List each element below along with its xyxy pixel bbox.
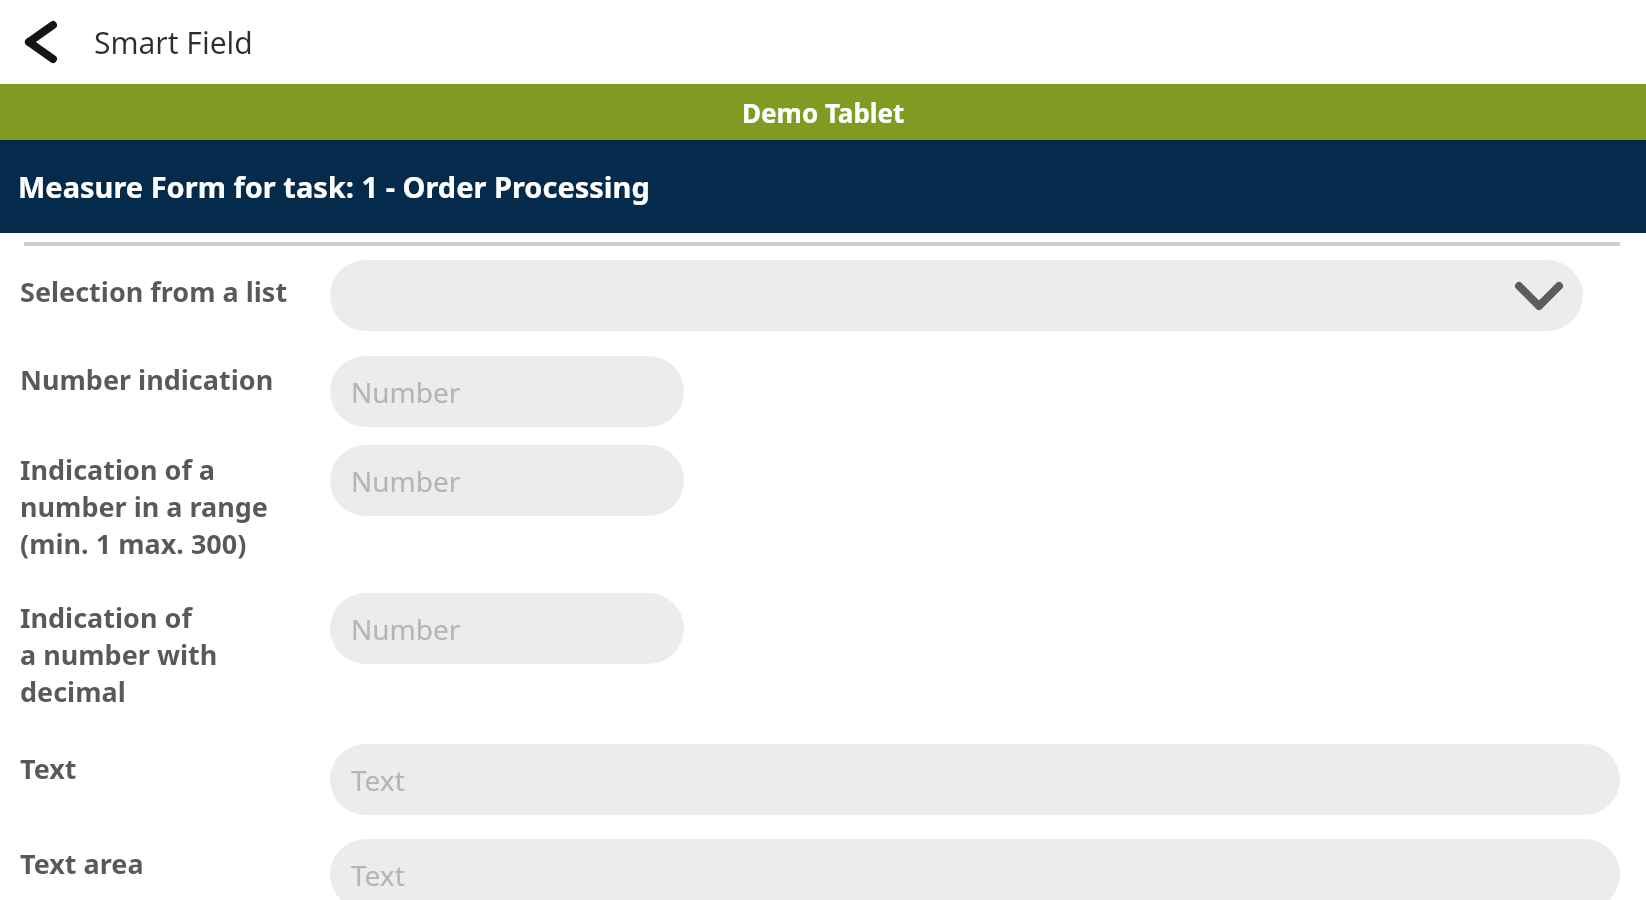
- staticText: Selection from a list: [20, 273, 288, 310]
- staticText: decimal: [20, 673, 126, 710]
- staticText: Text: [351, 761, 405, 799]
- staticText: Measure Form for task: 1 - Order Process…: [18, 167, 650, 206]
- button[interactable]: Number indication: [330, 356, 684, 427]
- button[interactable]: Indication of a number in a range: [330, 445, 684, 516]
- staticText: Text area: [20, 845, 144, 882]
- staticText: Demo Tablet: [742, 95, 905, 130]
- staticText: Number: [351, 462, 461, 500]
- staticText: Indication of a: [20, 451, 216, 488]
- staticText: (min. 1 max. 300): [20, 525, 247, 562]
- button[interactable]: Back: [6, 9, 72, 75]
- staticText: Indication of: [20, 599, 192, 636]
- staticText: Number: [351, 610, 461, 648]
- staticText: Number: [351, 373, 461, 411]
- button[interactable]: Text: [330, 744, 1620, 815]
- staticText: Text: [20, 750, 77, 787]
- staticText: number in a range: [20, 488, 268, 525]
- button[interactable]: Text area: [330, 839, 1620, 900]
- button[interactable]: Selection from a list: [330, 260, 1583, 331]
- staticText: Number indication: [20, 361, 274, 398]
- staticText: Text: [351, 856, 405, 894]
- staticText: Smart Field: [94, 22, 253, 63]
- staticText: a number with: [20, 636, 218, 673]
- button[interactable]: Indication of a number with decimal: [330, 593, 684, 664]
